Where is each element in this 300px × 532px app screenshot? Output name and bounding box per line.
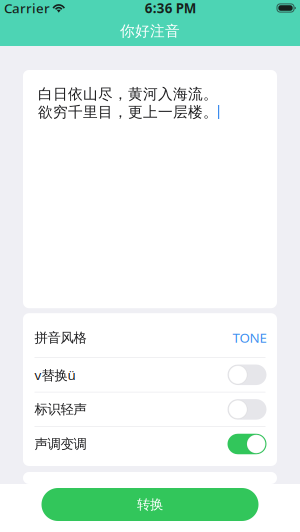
staticText: 声调变调 bbox=[34, 436, 86, 452]
staticText: 白日依山尽，黄河入海流。 bbox=[38, 85, 218, 103]
staticText: 你好注音 bbox=[120, 22, 180, 40]
staticText: 转换 bbox=[137, 496, 163, 513]
staticText: v替换ü bbox=[34, 366, 75, 384]
staticText: 6:36 PM bbox=[145, 0, 197, 17]
button[interactable]: v替换ü bbox=[23, 358, 277, 392]
staticText: Carrier bbox=[4, 0, 50, 17]
staticText: 欲穷千里目，更上一层楼。 bbox=[38, 103, 218, 121]
button[interactable]: 拼音风格 bbox=[23, 318, 277, 357]
button[interactable]: 声调变调 bbox=[23, 427, 277, 461]
staticText: 标识轻声 bbox=[34, 401, 86, 418]
staticText: 拼音风格 bbox=[34, 329, 86, 346]
button[interactable]: 转换 bbox=[41, 488, 258, 521]
button[interactable]: 标识轻声 bbox=[23, 392, 277, 426]
staticText: TONE bbox=[232, 329, 266, 346]
